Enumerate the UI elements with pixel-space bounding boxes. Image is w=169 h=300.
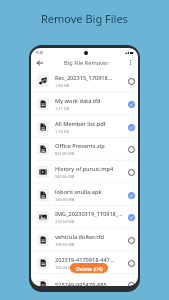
staticText: My work data.tfd [55, 97, 101, 105]
staticText: 9:30 [36, 50, 44, 55]
button[interactable]: Select file [126, 258, 136, 268]
staticText: Rec_202315_170918... [55, 74, 113, 82]
staticText: Office Presents.zip [55, 142, 105, 150]
staticText: History of purusi.mp4 [55, 165, 114, 173]
button[interactable]: Select file [126, 280, 136, 286]
staticText: All Member list.pdf [55, 120, 106, 128]
staticText: loborti snulla.apk [55, 188, 102, 196]
button[interactable]: 525249-995478-885... [31, 273, 138, 286]
staticText: IMG_20230319_1T0918_... [55, 210, 123, 218]
staticText: 1.84 GB [55, 83, 70, 88]
button[interactable]: Back [34, 57, 45, 68]
button[interactable]: Delete (04) [70, 263, 108, 273]
button[interactable]: My work data.tfd [31, 92, 138, 115]
button[interactable]: Select file [126, 76, 136, 86]
staticText: Remove Big Files [41, 11, 128, 26]
button[interactable]: Rec_202315_170918... [31, 69, 138, 92]
staticText: 345.65 MB [55, 197, 75, 202]
button[interactable]: More options [125, 57, 136, 68]
button[interactable]: 202319-4170918-447... [31, 251, 138, 274]
staticText: 158.24 MB [55, 265, 75, 270]
staticText: 1.21 GB [55, 106, 70, 111]
button[interactable]: vehicula dolker.tfd [31, 228, 138, 251]
button[interactable]: Select file [126, 190, 136, 200]
staticText: vehicula dolker.tfd [55, 233, 104, 241]
staticText: 214.54 MB [55, 219, 75, 224]
button[interactable]: Office Presents.zip [31, 137, 138, 160]
button[interactable]: Select file [126, 167, 136, 177]
staticText: 202319-4170918-447... [55, 256, 115, 264]
button[interactable]: Select file [126, 235, 136, 245]
button[interactable]: IMG_20230319_1T0918_... [31, 205, 138, 228]
staticText: Delete (04) [76, 265, 103, 272]
staticText: 841.85 MB [55, 151, 75, 156]
button[interactable]: All Member list.pdf [31, 115, 138, 138]
button[interactable]: Select file [126, 212, 136, 222]
staticText: 198.65 MB [55, 242, 75, 247]
button[interactable]: Select file [126, 99, 136, 109]
button[interactable]: Select file [126, 122, 136, 132]
button[interactable]: Select file [126, 144, 136, 154]
staticText: 525249-995478-885... [55, 281, 112, 286]
button[interactable]: History of purusi.mp4 [31, 160, 138, 183]
staticText: Big File Remover [64, 59, 109, 67]
button[interactable]: loborti snulla.apk [31, 183, 138, 206]
staticText: 540.65 MB [55, 174, 75, 179]
staticText: 1.10 GB [55, 129, 70, 134]
